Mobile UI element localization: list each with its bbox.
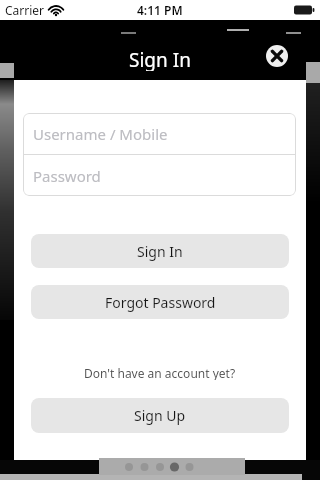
button[interactable]: Sign In [31,234,289,268]
staticText: Sign Up [134,406,186,425]
staticText: Sign In [137,242,183,261]
staticText: Don't have an account yet? [84,365,236,380]
staticText: Sign In [129,47,191,71]
staticText: Forgot Password [105,293,216,312]
button[interactable]: Forgot Password [31,285,289,319]
staticText: 4:11 PM [137,2,183,18]
button[interactable]: Sign Up [31,398,289,433]
button[interactable]: Password [23,155,296,196]
button[interactable]: Username / Mobile [23,113,296,154]
staticText: Password [33,166,101,186]
staticText: Username / Mobile [33,124,168,144]
button[interactable] [266,45,288,67]
staticText: Carrier [5,2,45,18]
